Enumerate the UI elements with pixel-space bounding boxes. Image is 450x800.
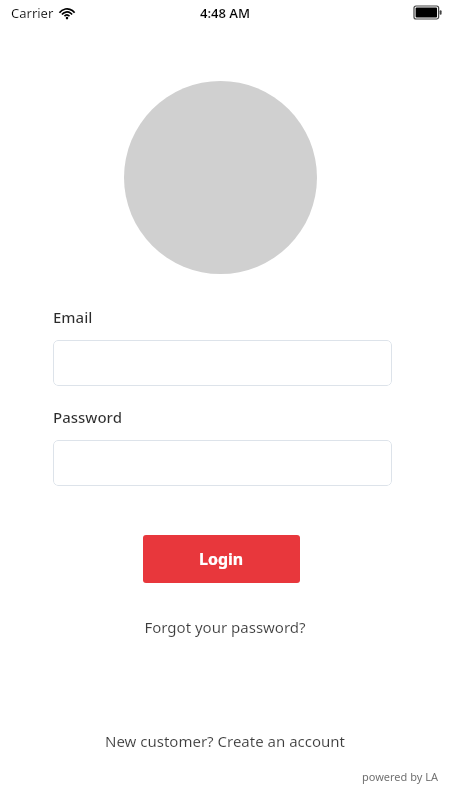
button[interactable]: [53, 340, 392, 386]
staticText: Forgot your password?: [144, 617, 306, 637]
staticText: 4:48 AM: [200, 4, 251, 22]
staticText: Password: [53, 407, 122, 427]
staticText: Email: [53, 307, 93, 327]
staticText: powered by LA: [362, 769, 439, 784]
staticText: New customer? Create an account: [105, 731, 345, 751]
staticText: Login: [199, 548, 244, 570]
button[interactable]: Login: [143, 535, 300, 583]
button[interactable]: [53, 440, 392, 486]
button[interactable]: New customer? Create an account: [0, 728, 450, 754]
button[interactable]: Forgot your password?: [0, 613, 450, 641]
staticText: Carrier: [11, 4, 54, 22]
